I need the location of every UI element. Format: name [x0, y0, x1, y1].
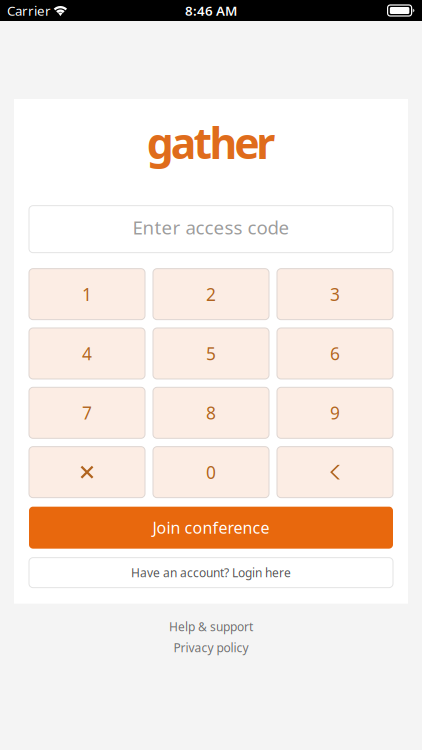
- button[interactable]: 7: [29, 387, 145, 438]
- staticText: Enter access code: [132, 215, 289, 240]
- staticText: Carrier: [7, 2, 51, 19]
- staticText: Privacy policy: [173, 640, 248, 655]
- button[interactable]: Help & support: [169, 619, 253, 635]
- staticText: 1: [82, 283, 92, 306]
- button[interactable]: 2: [153, 269, 269, 320]
- staticText: 3: [330, 283, 340, 306]
- staticText: Help & support: [169, 619, 253, 635]
- staticText: 5: [206, 342, 216, 365]
- button[interactable]: Privacy policy: [173, 640, 248, 655]
- button[interactable]: 6: [277, 328, 393, 379]
- button[interactable]: [277, 447, 393, 498]
- staticText: gather: [147, 114, 275, 171]
- staticText: 4: [82, 342, 92, 365]
- button[interactable]: 4: [29, 328, 145, 379]
- staticText: Join conference: [152, 517, 269, 538]
- button[interactable]: 1: [29, 269, 145, 320]
- staticText: 8:46 AM: [185, 2, 237, 19]
- staticText: 7: [82, 401, 92, 424]
- button[interactable]: 0: [153, 447, 269, 498]
- button[interactable]: 5: [153, 328, 269, 379]
- staticText: 9: [330, 401, 340, 424]
- staticText: 6: [330, 342, 340, 365]
- staticText: 8: [206, 401, 216, 424]
- button[interactable]: 8: [153, 387, 269, 438]
- button[interactable]: [29, 447, 145, 498]
- button[interactable]: Have an account? Login here: [29, 558, 393, 588]
- staticText: 0: [206, 461, 216, 484]
- button[interactable]: Join conference: [29, 507, 393, 549]
- button[interactable]: 3: [277, 269, 393, 320]
- staticText: Have an account? Login here: [131, 565, 291, 581]
- staticText: 2: [206, 283, 216, 306]
- button[interactable]: 9: [277, 387, 393, 438]
